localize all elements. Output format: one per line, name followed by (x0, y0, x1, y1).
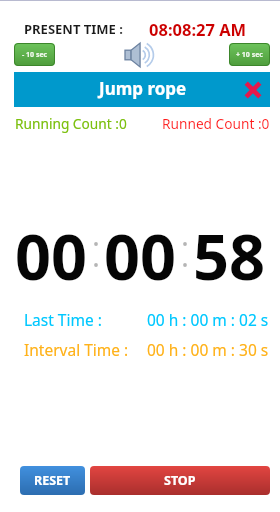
staticText: 58 (193, 213, 266, 299)
button[interactable]: Close (244, 81, 262, 99)
button[interactable]: + 10 sec (229, 43, 270, 66)
staticText: 00 h : 00 m : 02 s (147, 309, 269, 330)
staticText: - 10 sec (22, 50, 48, 60)
staticText: 00 h : 00 m : 30 s (147, 339, 269, 360)
button[interactable]: Sound (125, 43, 154, 67)
button[interactable]: Jump rope (14, 72, 270, 107)
staticText: Jump rope (99, 77, 187, 100)
staticText: STOP (164, 472, 196, 489)
button[interactable]: STOP (90, 466, 270, 495)
button[interactable]: - 10 sec (14, 43, 55, 66)
staticText: 00 (104, 213, 177, 299)
staticText: 00 (15, 213, 88, 299)
staticText: Runned Count :0 (162, 114, 270, 133)
staticText: + 10 sec (236, 50, 263, 60)
staticText: RESET (34, 472, 71, 489)
staticText: Last Time : (24, 309, 102, 330)
staticText: Running Count :0 (15, 114, 127, 133)
staticText: 08:08:27 AM (149, 18, 247, 40)
staticText: PRESENT TIME : (24, 20, 123, 38)
button[interactable]: RESET (20, 466, 85, 495)
staticText: Interval Time : (24, 339, 129, 360)
